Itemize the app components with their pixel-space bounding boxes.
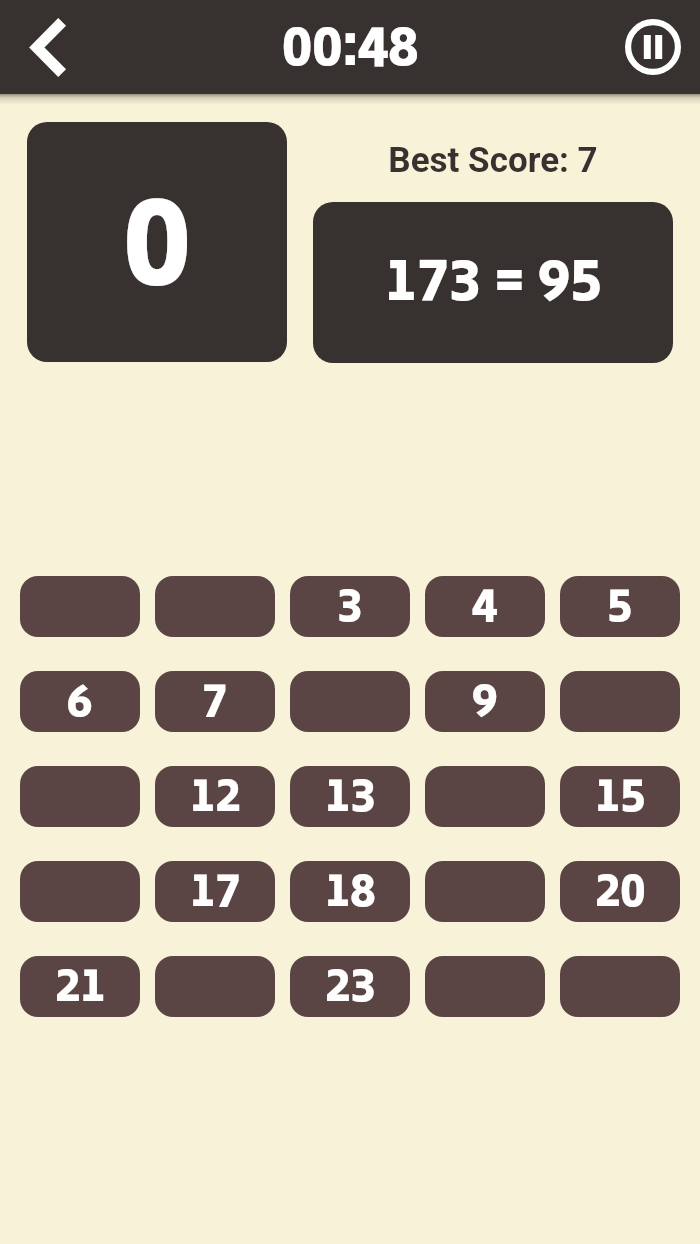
- staticText: 9: [472, 671, 498, 726]
- button[interactable]: 13: [290, 766, 410, 827]
- button[interactable]: Back: [12, 11, 84, 83]
- button[interactable]: [155, 576, 275, 637]
- staticText: 4: [472, 576, 498, 631]
- button[interactable]: [20, 576, 140, 637]
- button[interactable]: [560, 956, 680, 1017]
- button[interactable]: 9: [425, 671, 545, 732]
- button[interactable]: [20, 766, 140, 827]
- staticText: 12: [190, 766, 241, 821]
- button[interactable]: [155, 956, 275, 1017]
- button[interactable]: [425, 861, 545, 922]
- staticText: 6: [67, 671, 93, 726]
- button[interactable]: 7: [155, 671, 275, 732]
- button[interactable]: [425, 766, 545, 827]
- staticText: 5: [607, 576, 633, 631]
- staticText: 18: [325, 861, 376, 916]
- staticText: 0: [123, 146, 192, 362]
- button[interactable]: 17: [155, 861, 275, 922]
- staticText: 3: [337, 576, 363, 631]
- button[interactable]: [20, 861, 140, 922]
- button[interactable]: 20: [560, 861, 680, 922]
- staticText: 00:48: [282, 4, 419, 98]
- button[interactable]: 173 = 95: [313, 202, 673, 363]
- button[interactable]: 12: [155, 766, 275, 827]
- staticText: 23: [325, 956, 376, 1011]
- staticText: 20: [595, 861, 646, 916]
- staticText: Best Score: 7: [313, 140, 673, 181]
- button[interactable]: Pause: [619, 13, 687, 81]
- button[interactable]: 18: [290, 861, 410, 922]
- staticText: 17: [190, 861, 241, 916]
- staticText: 7: [202, 671, 228, 726]
- button[interactable]: [290, 671, 410, 732]
- staticText: 173 = 95: [385, 236, 602, 338]
- button[interactable]: 15: [560, 766, 680, 827]
- button[interactable]: 0: [27, 122, 287, 362]
- button[interactable]: 3: [290, 576, 410, 637]
- button[interactable]: 6: [20, 671, 140, 732]
- staticText: 15: [595, 766, 646, 821]
- button[interactable]: [560, 671, 680, 732]
- button[interactable]: 4: [425, 576, 545, 637]
- staticText: 13: [325, 766, 376, 821]
- button[interactable]: 21: [20, 956, 140, 1017]
- button[interactable]: 5: [560, 576, 680, 637]
- button[interactable]: 23: [290, 956, 410, 1017]
- button[interactable]: [425, 956, 545, 1017]
- staticText: 21: [55, 956, 106, 1011]
